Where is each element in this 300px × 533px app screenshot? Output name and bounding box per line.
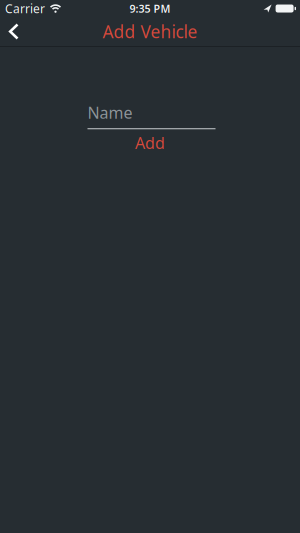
staticText: Name [87, 102, 132, 123]
button[interactable]: Back [0, 16, 19, 46]
staticText: 9:35 PM [129, 1, 170, 16]
button[interactable]: Add [135, 129, 165, 153]
button[interactable]: Name [87, 102, 215, 129]
staticText: Carrier [5, 0, 45, 16]
staticText: Add [135, 132, 165, 153]
staticText: Add Vehicle [102, 20, 197, 43]
